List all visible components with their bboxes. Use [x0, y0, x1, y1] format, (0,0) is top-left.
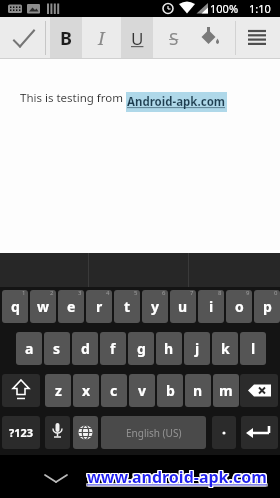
button[interactable] — [212, 416, 236, 449]
staticText: y — [151, 297, 159, 316]
staticText: www.android-apk.com — [87, 467, 267, 489]
staticText: 5 — [134, 290, 138, 297]
button[interactable]: b — [157, 374, 183, 407]
button[interactable]: u — [170, 290, 196, 323]
button[interactable]: U — [121, 17, 153, 59]
staticText: www.android-apk.com — [87, 466, 267, 488]
button[interactable]: English (US) — [101, 416, 206, 449]
button[interactable]: I — [88, 17, 115, 59]
staticText: U — [131, 27, 144, 50]
staticText: x — [82, 381, 91, 400]
staticText: r — [96, 297, 103, 316]
staticText: k — [221, 339, 230, 358]
staticText: 0 — [274, 290, 278, 297]
button[interactable]: p — [254, 290, 280, 323]
staticText: a — [25, 339, 34, 358]
button[interactable]: a — [16, 332, 42, 365]
button[interactable] — [240, 374, 278, 407]
button[interactable]: x — [73, 374, 99, 407]
button[interactable]: o — [226, 290, 252, 323]
button[interactable]: w — [30, 290, 56, 323]
button[interactable]: r — [86, 290, 112, 323]
button[interactable]: www.android-apk.com — [67, 464, 280, 490]
staticText: d — [81, 339, 90, 358]
staticText: 1:10 — [249, 1, 271, 16]
button[interactable] — [2, 416, 40, 449]
button[interactable]: k — [212, 332, 238, 365]
button[interactable]: s — [44, 332, 70, 365]
button[interactable]: S — [160, 17, 188, 59]
staticText: t — [124, 297, 131, 316]
button[interactable]: g — [128, 332, 154, 365]
staticText: I — [98, 26, 105, 51]
button[interactable]: c — [101, 374, 127, 407]
button[interactable] — [2, 374, 40, 407]
button[interactable]: h — [156, 332, 182, 365]
staticText: c — [110, 381, 118, 400]
button[interactable]: l — [240, 332, 266, 365]
staticText: Android-apk.com — [127, 94, 226, 110]
staticText: l — [251, 339, 256, 358]
staticText: h — [164, 339, 174, 358]
staticText: p — [263, 297, 272, 316]
staticText: This is testing from — [20, 90, 124, 106]
staticText: o — [235, 297, 244, 316]
staticText: u — [178, 297, 188, 316]
staticText: www.android-apk.com — [86, 467, 266, 489]
staticText: i — [209, 297, 214, 316]
staticText: www.android-apk.com — [86, 465, 266, 487]
staticText: www.android-apk.com — [87, 465, 267, 487]
staticText: 7 — [190, 290, 194, 297]
staticText: v — [138, 381, 146, 400]
staticText: f — [110, 339, 116, 358]
staticText: 9 — [246, 290, 250, 297]
staticText: e — [67, 297, 76, 316]
button[interactable] — [241, 416, 278, 449]
button[interactable] — [196, 17, 224, 59]
staticText: 2 — [50, 290, 54, 297]
staticText: B — [60, 26, 72, 51]
staticText: 6 — [162, 290, 166, 297]
staticText: w — [37, 297, 49, 316]
button[interactable]: n — [185, 374, 211, 407]
staticText: n — [193, 381, 203, 400]
button[interactable]: f — [100, 332, 126, 365]
staticText: g — [137, 339, 146, 358]
staticText: English (US) — [126, 426, 182, 440]
staticText: S — [169, 27, 179, 50]
button[interactable]: y — [142, 290, 168, 323]
staticText: 100% — [210, 1, 239, 16]
staticText: m — [219, 381, 233, 400]
button[interactable]: t — [114, 290, 140, 323]
button[interactable]: z — [45, 374, 71, 407]
button[interactable]: B — [50, 17, 82, 59]
staticText: www.android-apk.com — [88, 465, 268, 487]
staticText: q — [11, 297, 20, 316]
button[interactable] — [45, 416, 70, 449]
staticText: 3 — [78, 290, 82, 297]
staticText: 8 — [218, 290, 222, 297]
staticText: s — [53, 339, 61, 358]
staticText: www.android-apk.com — [88, 466, 268, 488]
button[interactable]: v — [129, 374, 155, 407]
staticText: www.android-apk.com — [86, 466, 266, 488]
staticText: ?123 — [9, 425, 34, 440]
staticText: j — [195, 339, 200, 358]
button[interactable] — [73, 416, 98, 449]
button[interactable]: i — [198, 290, 224, 323]
button[interactable]: q — [2, 290, 28, 323]
button[interactable]: Android-apk.com — [126, 92, 227, 112]
staticText: www.android-apk.com — [88, 467, 268, 489]
button[interactable]: e — [58, 290, 84, 323]
button[interactable]: j — [184, 332, 210, 365]
staticText: z — [55, 381, 62, 400]
staticText: b — [166, 381, 175, 400]
staticText: 1 — [22, 290, 26, 297]
button[interactable]: m — [213, 374, 239, 407]
button[interactable]: d — [72, 332, 98, 365]
button[interactable] — [6, 17, 42, 59]
staticText: 4 — [106, 290, 110, 297]
button[interactable] — [242, 17, 272, 59]
